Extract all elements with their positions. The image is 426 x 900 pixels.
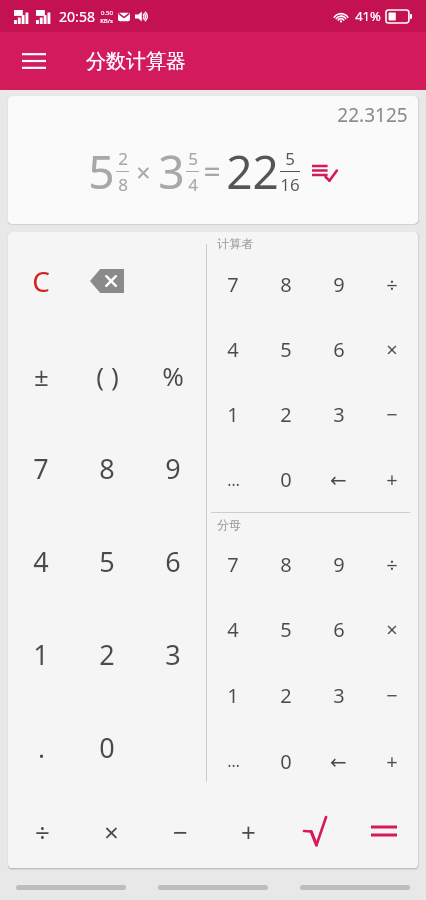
button[interactable]: Menu [10, 37, 58, 85]
button[interactable]: Navigation [16, 885, 126, 890]
button[interactable]: ÷ [365, 532, 418, 597]
button[interactable]: Navigation [158, 885, 268, 890]
staticText: 3 [158, 140, 185, 203]
staticText: × [386, 336, 398, 363]
staticText: 5 [188, 147, 198, 170]
staticText: KB/s [100, 17, 113, 25]
button[interactable]: − [146, 794, 214, 868]
staticText: 计算者 [217, 236, 253, 251]
staticText: … [227, 469, 240, 491]
staticText: 7 [227, 271, 239, 298]
button[interactable]: 7 [207, 251, 259, 317]
button[interactable]: 1 [207, 382, 259, 447]
staticText: C [32, 262, 50, 300]
staticText: 0 [280, 466, 292, 493]
staticText: 8 [99, 450, 115, 487]
staticText: 9 [333, 551, 345, 578]
button[interactable]: − [365, 382, 418, 447]
staticText: 3 [333, 682, 345, 709]
button[interactable]: 5 [259, 317, 312, 382]
staticText: 6 [333, 336, 345, 363]
button[interactable]: ← [312, 728, 365, 794]
staticText: 22.3125 [337, 102, 408, 128]
staticText: 2 [99, 636, 115, 673]
button[interactable]: % [140, 329, 206, 422]
staticText: 4 [33, 543, 49, 580]
button[interactable]: 22.3125 [8, 96, 418, 224]
button[interactable]: Result options [309, 157, 339, 187]
staticText: 41% [355, 7, 381, 25]
staticText: ← [330, 468, 347, 491]
button[interactable]: 9 [312, 251, 365, 317]
button[interactable]: 8 [74, 422, 140, 515]
staticText: ÷ [35, 814, 50, 849]
button[interactable]: 1 [8, 608, 74, 701]
button[interactable]: 8 [259, 532, 312, 597]
staticText: 9 [333, 271, 345, 298]
staticText: 5 [280, 616, 292, 643]
staticText: 1 [227, 401, 239, 428]
button[interactable]: × [365, 597, 418, 662]
button[interactable]: ± [8, 329, 74, 422]
button[interactable]: 2 [259, 382, 312, 447]
button[interactable]: 3 [312, 382, 365, 447]
staticText: 0 [280, 748, 292, 775]
staticText: 4 [227, 616, 239, 643]
button[interactable]: C [8, 232, 74, 329]
staticText: 7 [227, 551, 239, 578]
button[interactable]: 5 [74, 515, 140, 608]
button[interactable]: ÷ [365, 251, 418, 317]
button[interactable]: 0 [259, 728, 312, 794]
button[interactable]: … [207, 728, 259, 794]
button[interactable] [350, 794, 418, 868]
button[interactable]: 3 [140, 608, 206, 701]
button[interactable]: 7 [207, 532, 259, 597]
button[interactable]: 0 [259, 447, 312, 512]
button[interactable]: 6 [312, 597, 365, 662]
button[interactable]: 6 [140, 515, 206, 608]
button[interactable]: 2 [259, 662, 312, 728]
staticText: 2 [118, 147, 128, 170]
staticText: ÷ [386, 271, 398, 298]
staticText: 6 [165, 543, 181, 580]
button[interactable]: 0 [74, 701, 140, 794]
button[interactable]: 4 [207, 317, 259, 382]
button[interactable]: − [365, 662, 418, 728]
staticText: ÷ [386, 551, 398, 578]
button[interactable]: 2 [74, 608, 140, 701]
button[interactable]: + [365, 728, 418, 794]
button[interactable]: 1 [207, 662, 259, 728]
staticText: − [173, 814, 188, 849]
button[interactable]: 5 [259, 597, 312, 662]
button[interactable]: … [207, 447, 259, 512]
button[interactable]: 8 [259, 251, 312, 317]
button[interactable]: ( ) [74, 329, 140, 422]
staticText: 5 [280, 336, 292, 363]
staticText: % [162, 358, 184, 393]
button[interactable]: ÷ [8, 794, 77, 868]
button[interactable]: 9 [312, 532, 365, 597]
button[interactable]: ← [312, 447, 365, 512]
button[interactable] [282, 794, 350, 868]
staticText: 8 [280, 551, 292, 578]
button[interactable]: × [365, 317, 418, 382]
staticText: . [38, 730, 45, 765]
button[interactable]: × [77, 794, 146, 868]
staticText: 2 [280, 401, 292, 428]
button[interactable]: 4 [8, 515, 74, 608]
staticText: 8 [280, 271, 292, 298]
button[interactable]: 7 [8, 422, 74, 515]
button[interactable]: 4 [207, 597, 259, 662]
staticText: … [227, 750, 240, 772]
button[interactable]: Backspace [74, 232, 140, 329]
button[interactable]: 3 [312, 662, 365, 728]
button[interactable]: + [365, 447, 418, 512]
staticText: 5 [99, 543, 115, 580]
button[interactable]: . [8, 701, 74, 794]
button[interactable]: 9 [140, 422, 206, 515]
staticText: 5 [285, 147, 295, 170]
button[interactable]: Navigation [300, 885, 410, 890]
staticText: 分母 [217, 517, 241, 532]
button[interactable]: 6 [312, 317, 365, 382]
button[interactable]: + [214, 794, 282, 868]
